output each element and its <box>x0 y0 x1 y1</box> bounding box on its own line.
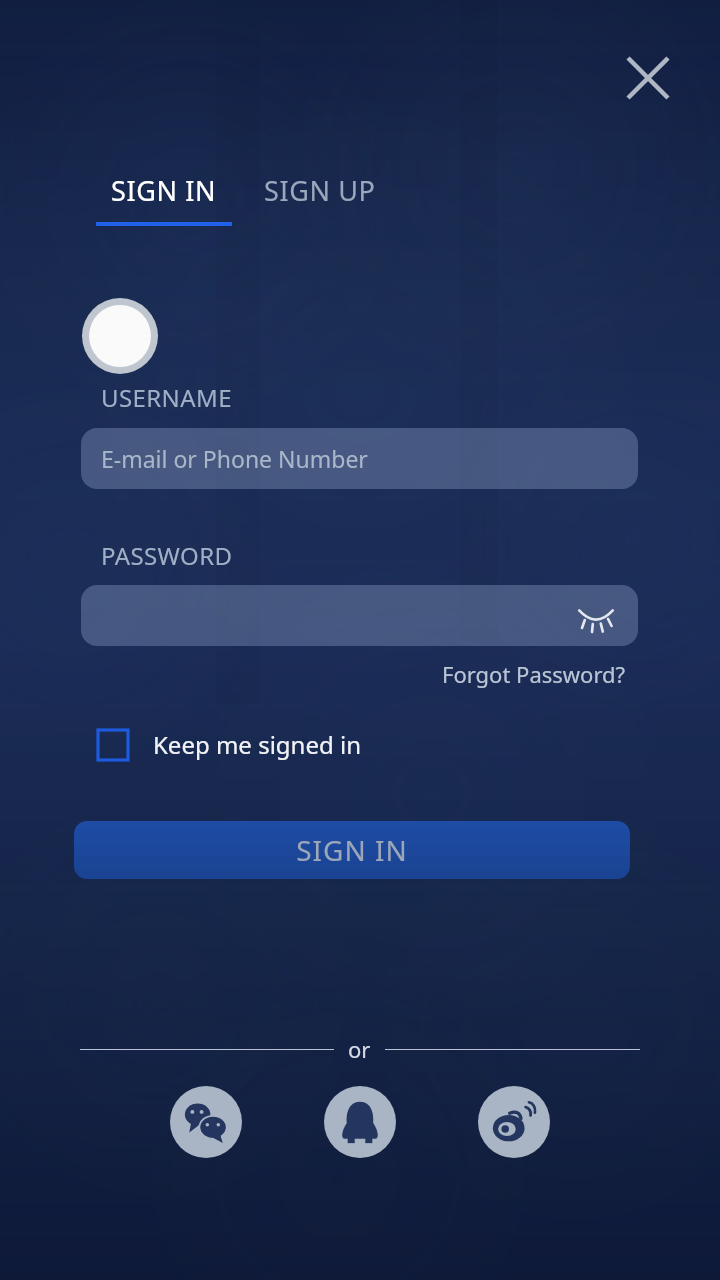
staticText: Forgot Password? <box>442 659 626 689</box>
button[interactable]: Profile photo <box>82 298 158 374</box>
staticText: Keep me signed in <box>153 728 361 761</box>
button[interactable]: Forgot Password? <box>436 655 632 693</box>
button[interactable]: SIGN IN <box>74 821 630 879</box>
button[interactable]: SIGN UP <box>264 172 376 209</box>
button[interactable] <box>81 585 638 646</box>
button[interactable]: QQ sign in <box>324 1086 396 1158</box>
button[interactable]: WeChat sign in <box>170 1086 242 1158</box>
staticText: PASSWORD <box>101 539 233 572</box>
staticText: SIGN IN <box>111 172 217 209</box>
button[interactable]: Close <box>608 38 688 118</box>
button[interactable]: Show password <box>566 586 626 646</box>
button[interactable]: SIGN IN <box>96 172 232 226</box>
staticText: E-mail or Phone Number <box>101 443 368 474</box>
staticText: SIGN UP <box>264 172 376 209</box>
button[interactable]: Weibo sign in <box>478 1086 550 1158</box>
button[interactable]: E-mail or Phone Number <box>81 428 638 489</box>
staticText: SIGN IN <box>296 831 408 869</box>
button[interactable]: Keep me signed in <box>92 722 367 767</box>
staticText: or <box>348 1034 371 1064</box>
staticText: USERNAME <box>101 381 232 414</box>
